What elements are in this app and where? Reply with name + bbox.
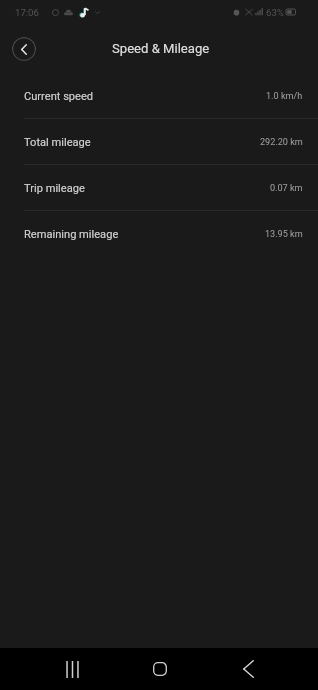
staticText: 63% [266, 7, 284, 18]
staticText: 1.0 km/h [266, 91, 303, 102]
staticText: Total mileage [24, 136, 91, 149]
staticText: Trip mileage [24, 182, 85, 195]
button[interactable]: Current speed [0, 73, 318, 119]
staticText: 13.95 km [265, 229, 303, 240]
button[interactable]: Trip mileage [0, 165, 318, 211]
button[interactable]: Recent apps [50, 648, 94, 690]
button[interactable]: Home [138, 648, 182, 690]
button[interactable]: Back [12, 37, 36, 61]
button[interactable]: Back [226, 648, 270, 690]
staticText: Current speed [24, 90, 94, 103]
staticText: Speed & Mileage [112, 41, 210, 56]
staticText: 292.20 km [260, 137, 303, 148]
staticText: 0.07 km [270, 183, 303, 194]
button[interactable]: Remaining mileage [0, 211, 318, 256]
staticText: Remaining mileage [24, 228, 119, 241]
button[interactable]: Total mileage [0, 119, 318, 165]
staticText: 17:06 [15, 7, 39, 18]
